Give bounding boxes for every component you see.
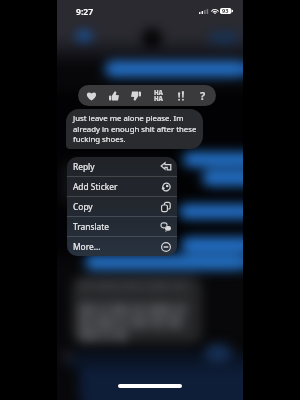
staticText: 9:27	[76, 6, 94, 18]
staticText: ?	[200, 88, 206, 103]
button[interactable]: Haha	[149, 86, 168, 105]
button[interactable]: Translate	[67, 217, 177, 236]
staticText: Translate	[73, 221, 110, 232]
staticText: 93	[222, 7, 229, 15]
staticText: Reply	[73, 161, 95, 172]
button[interactable]: Question	[193, 86, 212, 105]
button[interactable]: Reply	[67, 157, 177, 176]
button[interactable]: Just leave me alone please. Im already i…	[66, 109, 203, 149]
staticText: Just leave me alone please. Im already i…	[73, 113, 199, 144]
staticText: Copy	[73, 201, 93, 212]
staticText: Add Sticker	[73, 181, 118, 192]
button[interactable]: Love	[82, 86, 101, 105]
button[interactable]: Dislike	[126, 86, 145, 105]
button[interactable]: Exclamation	[171, 86, 190, 105]
button[interactable]: More...	[67, 237, 177, 256]
staticText: HA HA	[154, 89, 163, 103]
button[interactable]: Add Sticker	[67, 177, 177, 196]
staticText: More...	[73, 241, 101, 252]
button[interactable]: Like	[104, 86, 123, 105]
button[interactable]: Copy	[67, 197, 177, 216]
